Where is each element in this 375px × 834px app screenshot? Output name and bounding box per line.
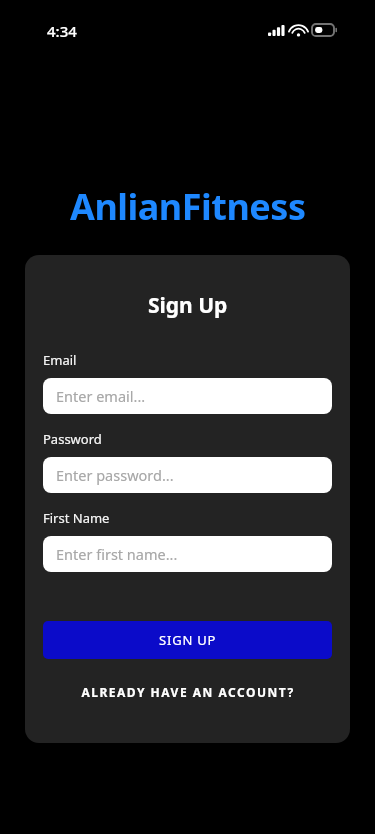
staticText: AnlianFitness: [70, 182, 306, 231]
button[interactable]: Enter first name...: [43, 536, 332, 572]
staticText: Enter password...: [56, 465, 174, 485]
staticText: 4:34: [47, 21, 77, 41]
staticText: Email: [43, 351, 77, 369]
staticText: Password: [43, 430, 102, 448]
staticText: Sign Up: [148, 291, 228, 320]
button[interactable]: ALREADY HAVE AN ACCOUNT?: [43, 677, 332, 707]
button[interactable]: Enter email...: [43, 378, 332, 414]
staticText: Enter email...: [56, 386, 146, 406]
staticText: First Name: [43, 509, 110, 527]
staticText: Enter first name...: [56, 544, 178, 564]
button[interactable]: SIGN UP: [43, 621, 332, 659]
staticText: SIGN UP: [159, 631, 217, 649]
button[interactable]: Enter password...: [43, 457, 332, 493]
staticText: ALREADY HAVE AN ACCOUNT?: [81, 684, 295, 700]
